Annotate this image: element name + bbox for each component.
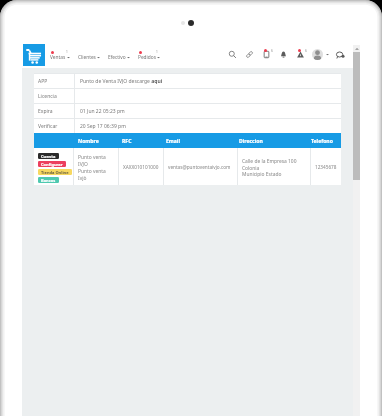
- button[interactable]: Perfil: [309, 49, 332, 60]
- button[interactable]: Pedidos: [134, 44, 164, 66]
- staticText: Pedidos: [138, 54, 156, 61]
- button[interactable]: Ventas: [46, 44, 74, 66]
- staticText: Cuenta: [41, 154, 56, 159]
- button[interactable]: Notificaciones: [275, 50, 292, 59]
- staticText: ventas@puntoventaivjo.com: [168, 164, 231, 170]
- button[interactable]: Dispositivo: [258, 50, 275, 59]
- staticText: XAXX010101000: [123, 164, 159, 170]
- staticText: Direccion: [239, 138, 263, 145]
- staticText: Punto de Venta IVJO descarge aqui: [80, 78, 163, 85]
- staticText: 1: [66, 50, 68, 54]
- button[interactable]: Efectivo: [104, 44, 134, 66]
- button[interactable]: Buscar: [224, 50, 241, 59]
- staticText: RFC: [122, 138, 132, 145]
- staticText: Clientes: [78, 54, 96, 61]
- staticText: 20 Sep 17 06:39 pm: [80, 123, 126, 130]
- button[interactable]: Clientes: [74, 44, 104, 66]
- staticText: Telefono: [311, 138, 333, 145]
- staticText: 1: [156, 50, 158, 54]
- button[interactable]: Soporte: [332, 50, 349, 59]
- staticText: 01 Jun 22 05:23 pm: [80, 108, 125, 115]
- staticText: Calle de la Empresa 100 Colonia Municipi…: [242, 158, 297, 177]
- staticText: Tienda Online: [41, 170, 69, 175]
- staticText: Expira: [38, 108, 53, 115]
- staticText: Nombre: [78, 138, 99, 145]
- staticText: Configurar: [41, 162, 63, 167]
- staticText: Bancos: [41, 178, 56, 183]
- staticText: Punto venta IVJO Punto venta Ivjò: [78, 154, 106, 182]
- staticText: 6: [271, 49, 273, 53]
- staticText: Email: [166, 138, 180, 145]
- button[interactable]: Alertas: [292, 50, 309, 59]
- staticText: Licencia: [38, 93, 57, 100]
- staticText: Ventas: [50, 54, 66, 61]
- button[interactable]: Inicio: [23, 44, 45, 66]
- staticText: Efectivo: [108, 54, 126, 61]
- staticText: 12345678: [315, 164, 337, 170]
- button[interactable]: Enlace: [241, 50, 258, 59]
- staticText: Verificar: [38, 123, 58, 130]
- staticText: APP: [38, 78, 48, 85]
- staticText: 6: [305, 49, 307, 53]
